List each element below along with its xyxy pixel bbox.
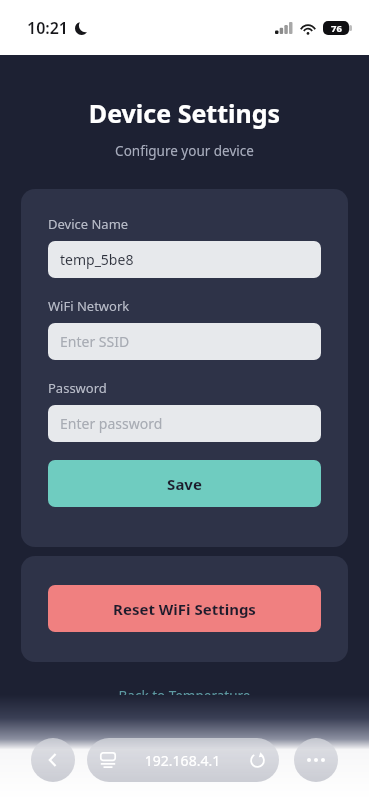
button[interactable]: Reset WiFi Settings: [48, 585, 321, 632]
staticText: Device Name: [48, 215, 129, 233]
button[interactable]: Back to Temperature: [0, 684, 369, 708]
button[interactable]: 192.168.4.1: [87, 738, 279, 782]
button[interactable]: Reload: [249, 752, 266, 769]
button[interactable]: More options: [294, 738, 338, 782]
staticText: Enter password: [60, 414, 163, 433]
button[interactable]: temp_5be8: [48, 241, 321, 278]
staticText: 192.168.4.1: [116, 751, 249, 770]
staticText: Reset WiFi Settings: [113, 599, 256, 619]
button[interactable]: Enter SSID: [48, 323, 321, 360]
button[interactable]: Save: [48, 460, 321, 507]
staticText: Save: [167, 474, 202, 494]
button[interactable]: Back: [31, 738, 75, 782]
button[interactable]: Enter password: [48, 405, 321, 442]
staticText: WiFi Network: [48, 297, 130, 315]
staticText: Password: [48, 379, 107, 397]
staticText: temp_5be8: [60, 250, 134, 269]
staticText: Device Settings: [0, 96, 369, 130]
staticText: Back to Temperature: [0, 687, 369, 705]
staticText: Configure your device: [0, 142, 369, 160]
staticText: Enter SSID: [60, 332, 130, 351]
staticText: 76: [331, 22, 342, 35]
staticText: 10:21: [27, 17, 69, 39]
